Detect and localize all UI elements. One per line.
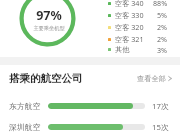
staticText: 2% [157, 34, 168, 44]
staticText: 查看全部 [137, 74, 166, 83]
button[interactable]: 深圳航空 [0, 120, 180, 134]
staticText: 空客 330 [115, 10, 144, 20]
staticText: 搭乘的航空公司 [9, 72, 83, 85]
staticText: 97% [36, 7, 62, 24]
staticText: 17次 [152, 101, 172, 112]
staticText: 主要乘坐机型 [33, 25, 65, 32]
staticText: 88% [153, 0, 168, 8]
staticText: 5% [157, 10, 168, 20]
button[interactable]: 搭乘的航空公司 [0, 65, 180, 91]
staticText: 2% [157, 22, 168, 32]
staticText: 15次 [152, 122, 172, 133]
button[interactable]: 查看全部 [137, 74, 172, 83]
staticText: 其他 [115, 45, 130, 54]
button[interactable]: 东方航空 [0, 99, 180, 113]
staticText: 深圳航空 [9, 122, 41, 132]
staticText: 空客 321 [115, 34, 144, 44]
staticText: 3% [157, 45, 168, 54]
other: View all [168, 75, 172, 82]
staticText: 东方航空 [9, 101, 41, 111]
staticText: 空客 340 [115, 0, 144, 8]
staticText: 空客 320 [115, 22, 144, 32]
